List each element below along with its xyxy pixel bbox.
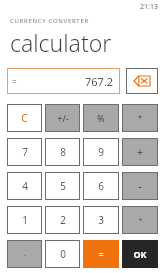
staticText: 3 [98, 213, 104, 227]
staticText: ÷ [138, 215, 143, 225]
staticText: * [138, 113, 142, 123]
button[interactable]: 0 [45, 240, 80, 268]
staticText: +/- [57, 112, 69, 124]
staticText: 0 [60, 247, 66, 261]
button[interactable]: 6 [83, 172, 119, 200]
staticText: OK [133, 248, 147, 260]
button[interactable]: 2 [45, 206, 80, 234]
button[interactable]: 1 [7, 206, 42, 234]
button[interactable]: % [83, 104, 119, 132]
staticText: = [98, 248, 104, 260]
button[interactable]: 3 [83, 206, 119, 234]
staticText: 6 [98, 179, 104, 193]
button[interactable]: 9 [83, 138, 119, 166]
staticText: 8 [60, 145, 66, 159]
button[interactable]: - [122, 172, 158, 200]
button[interactable]: +/- [45, 104, 80, 132]
button[interactable]: ÷ [122, 206, 158, 234]
button[interactable]: = [83, 240, 119, 268]
staticText: 1 [22, 213, 28, 227]
button[interactable]: 8 [45, 138, 80, 166]
staticText: calculator [10, 27, 112, 58]
staticText: . [24, 249, 26, 259]
button[interactable]: + [122, 138, 158, 166]
button[interactable]: . [7, 240, 42, 268]
staticText: 767.2 [85, 74, 114, 89]
button[interactable]: 4 [7, 172, 42, 200]
staticText: = [12, 76, 17, 87]
staticText: 9 [98, 145, 104, 159]
staticText: 5 [60, 179, 66, 193]
staticText: % [97, 112, 105, 124]
staticText: 2 [60, 213, 66, 227]
staticText: 7 [22, 145, 28, 159]
staticText: CURRENCY CONVERTER [10, 17, 89, 25]
staticText: 21:13 [140, 2, 158, 12]
staticText: + [137, 145, 143, 159]
staticText: C [21, 111, 28, 125]
button[interactable]: * [122, 104, 158, 132]
button[interactable]: C [7, 104, 42, 132]
button[interactable]: Backspace [126, 68, 158, 94]
button[interactable]: 7 [7, 138, 42, 166]
button[interactable]: 5 [45, 172, 80, 200]
button[interactable]: = [7, 68, 120, 94]
staticText: 4 [22, 179, 28, 193]
staticText: - [138, 179, 142, 193]
button[interactable]: OK [122, 240, 158, 268]
